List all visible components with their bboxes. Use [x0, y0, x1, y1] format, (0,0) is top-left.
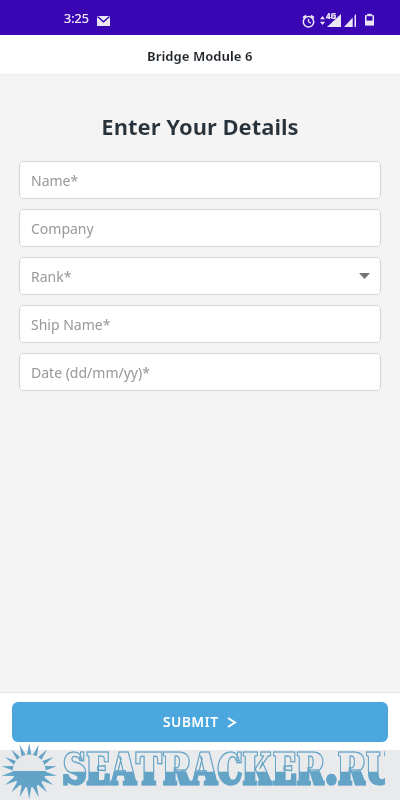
- staticText: SEATRACKER.RU: [63, 743, 385, 796]
- button[interactable]: SUBMIT: [12, 702, 388, 742]
- staticText: Ship Name*: [31, 315, 111, 334]
- button[interactable]: Company: [19, 209, 381, 247]
- button[interactable]: Ship Name*: [19, 305, 381, 343]
- button[interactable]: Name*: [19, 161, 381, 199]
- staticText: Rank*: [31, 267, 72, 286]
- staticText: Name*: [31, 171, 79, 190]
- staticText: SEATRACKER.RU: [63, 743, 385, 796]
- staticText: Date (dd/mm/yy)*: [31, 363, 150, 382]
- staticText: Bridge Module 6: [147, 47, 253, 65]
- staticText: Company: [31, 219, 94, 238]
- staticText: 4G: [326, 10, 337, 21]
- button[interactable]: Date (dd/mm/yy)*: [19, 353, 381, 391]
- other: Select rank: [359, 273, 370, 279]
- staticText: SUBMIT: [163, 713, 219, 731]
- staticText: 3:25: [64, 10, 89, 27]
- staticText: Enter Your Details: [0, 111, 400, 141]
- button[interactable]: Rank*: [19, 257, 381, 295]
